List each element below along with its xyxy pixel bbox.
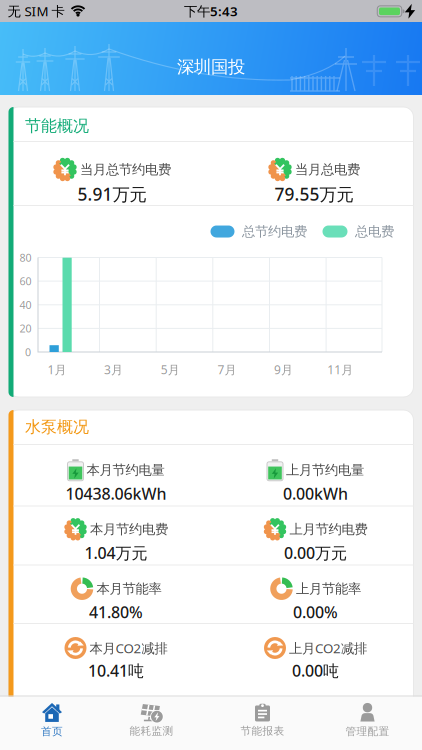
staticText: 本月节约电费: [90, 521, 168, 537]
staticText: 41.80%: [89, 601, 143, 623]
staticText: 1月: [47, 361, 66, 377]
button[interactable]: 首页: [2, 695, 102, 745]
staticText: 3月: [104, 361, 123, 377]
staticText: 下午5:43: [184, 2, 238, 20]
staticText: 当月总节约电费: [80, 161, 171, 178]
staticText: 5月: [161, 361, 180, 377]
staticText: 40: [19, 298, 31, 312]
staticText: 节能报表: [240, 724, 284, 737]
staticText: 上月节约电费: [289, 521, 367, 537]
staticText: 0.00%: [293, 601, 338, 623]
staticText: 0.00kWh: [283, 483, 348, 504]
staticText: 本月节约电量: [86, 462, 164, 478]
staticText: 本月CO2减排: [89, 639, 167, 657]
staticText: 节能概况: [25, 116, 89, 136]
staticText: 7月: [217, 361, 236, 377]
staticText: 管理配置: [345, 725, 389, 738]
staticText: 首页: [41, 725, 63, 738]
staticText: 水泵概况: [25, 417, 89, 437]
staticText: 上月CO2减排: [289, 639, 367, 657]
staticText: 能耗监测: [129, 724, 173, 737]
staticText: 0.00万元: [284, 542, 347, 563]
staticText: 1.04万元: [84, 542, 147, 563]
staticText: 60: [19, 274, 31, 288]
staticText: 10438.06kWh: [65, 483, 166, 504]
staticText: 上月节约电量: [286, 462, 364, 478]
staticText: 总电费: [355, 223, 394, 240]
staticText: 总节约电费: [242, 223, 307, 240]
staticText: 9月: [274, 361, 293, 377]
staticText: 10.41吨: [88, 660, 144, 681]
staticText: 深圳国投: [177, 56, 245, 78]
button[interactable]: 管理配置: [317, 695, 417, 745]
staticText: 无 SIM 卡: [7, 2, 64, 20]
staticText: 80: [19, 250, 31, 265]
staticText: 5.91万元: [77, 182, 146, 205]
staticText: 79.55万元: [274, 182, 353, 205]
staticText: 本月节能率: [96, 580, 161, 597]
staticText: 上月节能率: [296, 580, 361, 597]
staticText: 0.00吨: [292, 660, 339, 681]
button[interactable]: 节能报表: [212, 695, 312, 745]
staticText: 11月: [327, 361, 353, 377]
staticText: 当月总电费: [295, 161, 360, 178]
staticText: 0: [25, 345, 31, 359]
button[interactable]: 能耗监测: [101, 695, 201, 745]
staticText: 20: [19, 321, 31, 335]
